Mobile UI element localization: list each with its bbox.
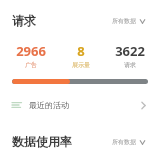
staticText: 所有数据 [112, 17, 136, 25]
staticText: 展示量 [72, 61, 90, 69]
staticText: 请求 [124, 61, 136, 69]
button[interactable]: 3622 [105, 41, 154, 70]
button[interactable]: 所有数据 [110, 15, 148, 27]
button[interactable]: 8 [56, 41, 105, 70]
staticText: 3622 [115, 42, 145, 60]
button[interactable]: 所有数据 [110, 136, 148, 148]
staticText: 所有数据 [112, 138, 136, 146]
button[interactable] [12, 79, 148, 84]
staticText: 请求 [12, 13, 36, 28]
staticText: 广告 [25, 61, 37, 69]
staticText: 2966 [16, 42, 46, 60]
staticText: 8 [77, 42, 85, 60]
other: List [12, 100, 22, 110]
staticText: 数据使用率 [12, 134, 72, 149]
staticText: 最近的活动 [29, 100, 69, 110]
button[interactable]: 2966 [6, 41, 56, 70]
button[interactable]: List [0, 96, 160, 114]
